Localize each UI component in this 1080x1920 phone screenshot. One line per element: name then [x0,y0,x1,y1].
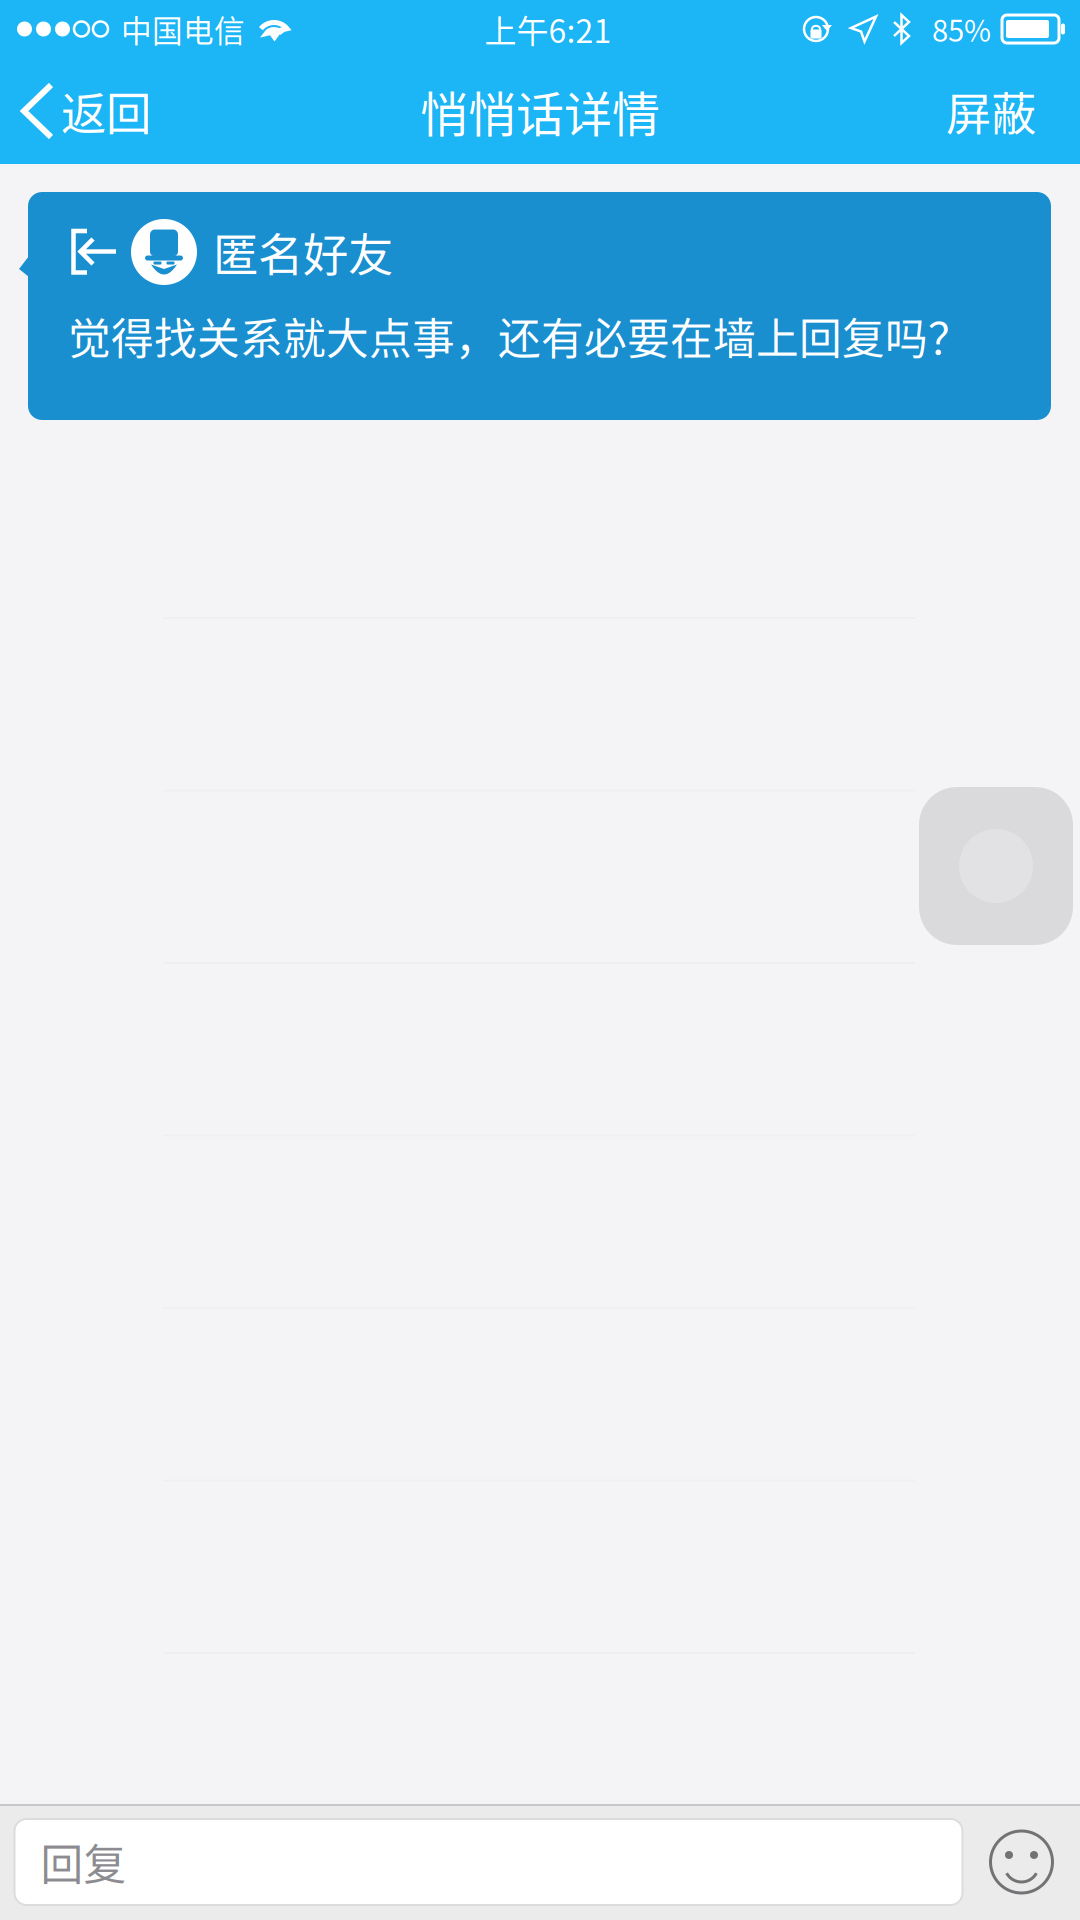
button[interactable]: AssistiveTouch [919,787,1073,945]
staticText: 匿名好友 [213,219,393,285]
staticText: 觉得找关系就大点事，还有必要在墙上回复吗？ [68,305,971,367]
staticText: 返回 [61,78,151,144]
staticText: 中国电信 [121,7,245,51]
staticText: 上午6:21 [484,6,611,52]
staticText: 85% [932,8,991,50]
button[interactable]: Emoji [962,1804,1080,1920]
staticText: 屏蔽 [946,78,1036,144]
button[interactable]: 返回 [0,58,169,164]
staticText: 回复 [40,1831,126,1893]
button[interactable]: 回复 [14,1819,962,1905]
button[interactable]: 屏蔽 [906,58,1080,164]
button[interactable]: 匿名好友 [28,192,1051,420]
staticText: 悄悄话详情 [420,76,660,146]
